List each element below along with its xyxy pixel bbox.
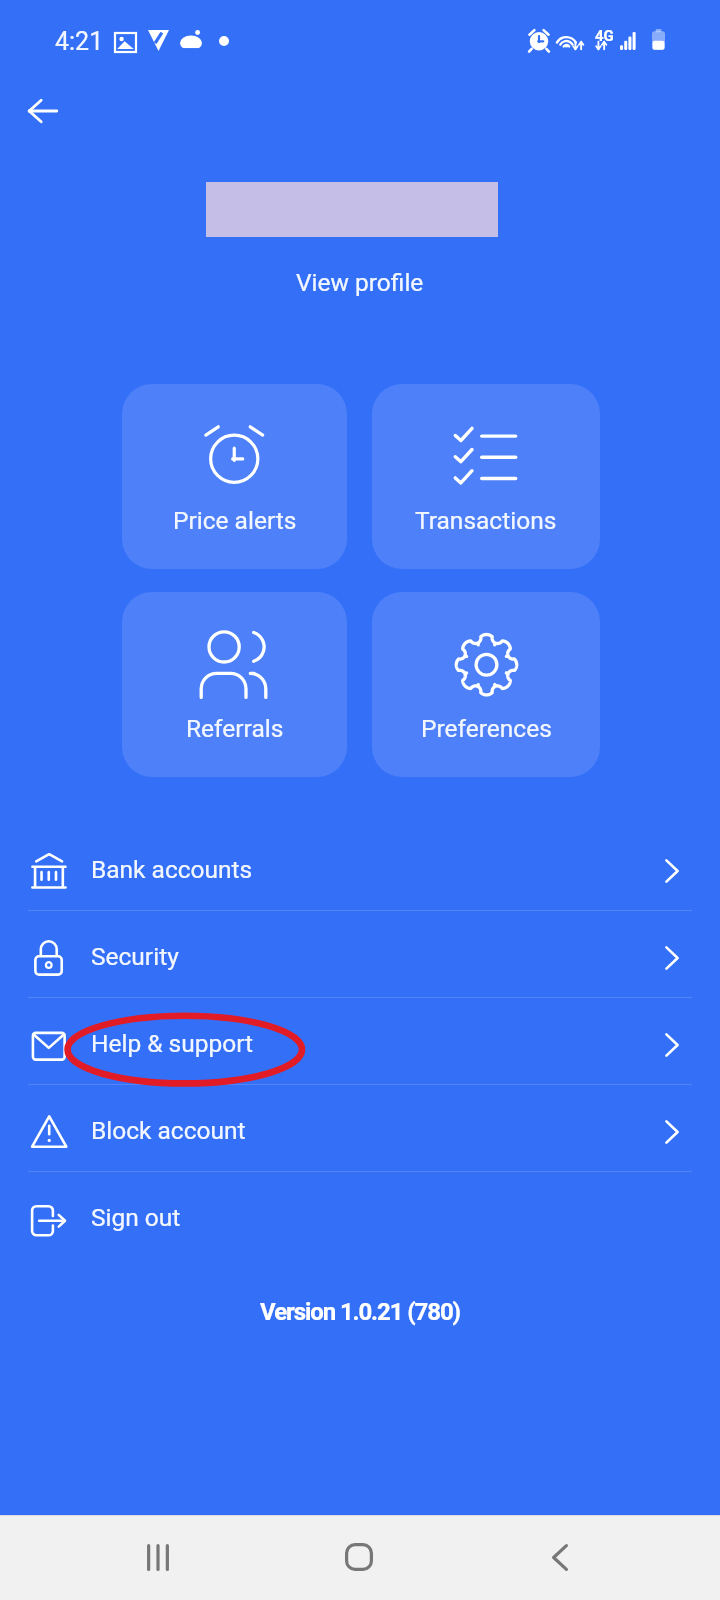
staticText: 4G (595, 27, 614, 45)
staticText: Security (91, 942, 179, 971)
button[interactable]: Security (0, 911, 720, 997)
button[interactable]: Recent apps (118, 1517, 198, 1597)
staticText: Version 1.0.21 (780) (260, 1298, 460, 1326)
button[interactable]: Bank accounts (0, 824, 720, 910)
button[interactable]: Back (19, 87, 67, 135)
staticText: 4:21 (55, 27, 104, 56)
staticText: Price alerts (173, 506, 297, 535)
staticText: Sign out (91, 1203, 181, 1232)
staticText: Preferences (421, 714, 552, 743)
button[interactable]: Price alerts (122, 384, 347, 569)
button[interactable]: Transactions (372, 384, 600, 569)
button[interactable]: Referrals (122, 592, 347, 777)
button[interactable]: View profile (296, 268, 424, 297)
button[interactable]: Help & support (0, 998, 720, 1084)
staticText: Bank accounts (91, 855, 253, 884)
staticText: Referrals (186, 714, 284, 743)
button[interactable]: Sign out (0, 1172, 720, 1258)
button[interactable]: Back (520, 1517, 600, 1597)
staticText: Block account (91, 1116, 246, 1145)
button[interactable]: Preferences (372, 592, 600, 777)
button[interactable]: Block account (0, 1085, 720, 1171)
button[interactable]: Home (319, 1517, 399, 1597)
staticText: Transactions (415, 506, 557, 535)
staticText: Help & support (91, 1029, 254, 1058)
